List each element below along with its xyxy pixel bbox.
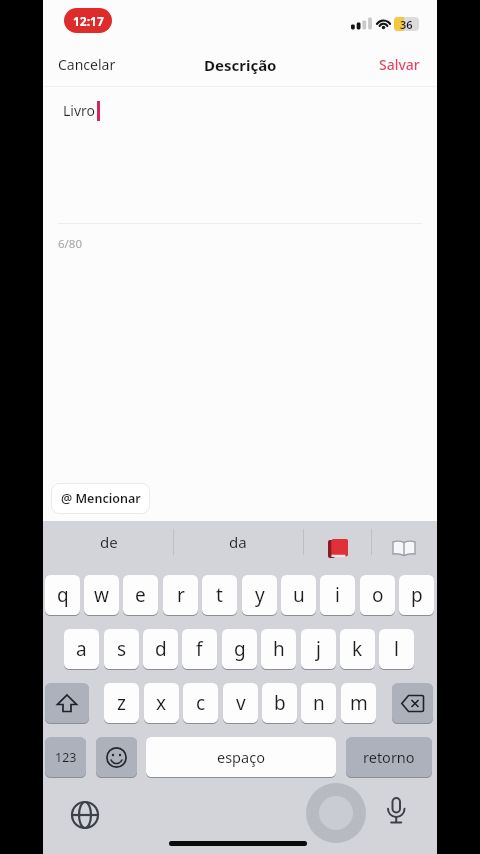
staticText: w <box>94 582 109 608</box>
button[interactable]: d <box>143 629 178 669</box>
staticText: Salvar <box>379 55 420 74</box>
staticText: a <box>76 636 87 662</box>
staticText: e <box>135 582 146 608</box>
staticText: 36 <box>400 17 413 31</box>
staticText: h <box>273 636 285 662</box>
button[interactable]: m <box>341 683 376 723</box>
staticText: t <box>216 582 223 608</box>
staticText: y <box>255 582 265 608</box>
staticText: r <box>177 582 185 608</box>
staticText: q <box>57 582 69 608</box>
staticText: d <box>155 636 167 662</box>
button[interactable]: k <box>340 629 375 669</box>
button[interactable]: w <box>84 575 119 615</box>
button[interactable]: x <box>144 683 179 723</box>
staticText: v <box>236 690 246 716</box>
button[interactable] <box>328 539 348 558</box>
button[interactable]: e <box>123 575 158 615</box>
button[interactable]: retorno <box>346 737 432 777</box>
staticText: u <box>293 582 305 608</box>
button[interactable]: f <box>182 629 217 669</box>
button[interactable] <box>392 683 433 723</box>
button[interactable]: de <box>45 521 173 563</box>
staticText: Descrição <box>204 55 277 75</box>
button[interactable]: t <box>202 575 237 615</box>
staticText: x <box>156 690 167 716</box>
button[interactable]: 123 <box>45 737 86 777</box>
button[interactable]: o <box>360 575 395 615</box>
button[interactable]: z <box>104 683 139 723</box>
button[interactable]: u <box>281 575 316 615</box>
button[interactable]: q <box>45 575 80 615</box>
staticText: 123 <box>55 749 77 766</box>
button[interactable]: a <box>64 629 99 669</box>
button[interactable]: l <box>379 629 414 669</box>
button[interactable]: 12:17 <box>64 8 112 33</box>
button[interactable]: Salvar <box>375 55 423 74</box>
button[interactable] <box>96 737 137 777</box>
button[interactable]: h <box>261 629 296 669</box>
button[interactable]: v <box>223 683 258 723</box>
staticText: p <box>411 582 423 608</box>
staticText: g <box>234 636 246 662</box>
button[interactable]: j <box>301 629 336 669</box>
staticText: k <box>352 636 363 662</box>
staticText: l <box>394 636 399 662</box>
button[interactable]: c <box>183 683 218 723</box>
staticText: s <box>117 636 127 662</box>
staticText: c <box>196 690 206 716</box>
button[interactable] <box>385 798 407 828</box>
button[interactable]: g <box>222 629 257 669</box>
staticText: Cancelar <box>58 55 116 74</box>
button[interactable]: n <box>301 683 336 723</box>
button[interactable]: @ Mencionar <box>51 483 150 514</box>
staticText: z <box>117 690 126 716</box>
button[interactable]: s <box>104 629 139 669</box>
staticText: o <box>372 582 384 608</box>
button[interactable]: p <box>399 575 434 615</box>
staticText: da <box>229 532 247 552</box>
button[interactable] <box>393 540 415 557</box>
staticText: b <box>274 690 286 716</box>
staticText: 12:17 <box>73 13 104 29</box>
staticText: @ Mencionar <box>61 490 141 507</box>
button[interactable] <box>69 799 101 831</box>
staticText: espaço <box>217 747 265 767</box>
staticText: m <box>350 690 368 716</box>
button[interactable]: y <box>242 575 277 615</box>
staticText: de <box>100 532 118 552</box>
staticText: n <box>313 690 325 716</box>
staticText: 6/80 <box>58 236 83 252</box>
staticText: f <box>196 636 203 662</box>
button[interactable]: r <box>163 575 198 615</box>
button[interactable]: Cancelar <box>58 55 116 74</box>
button[interactable]: i <box>320 575 355 615</box>
staticText: Livro <box>63 101 96 120</box>
button[interactable]: b <box>262 683 297 723</box>
staticText: i <box>335 582 340 608</box>
button[interactable] <box>45 683 89 723</box>
staticText: j <box>316 636 321 662</box>
button[interactable]: da <box>173 521 303 563</box>
staticText: retorno <box>363 747 415 767</box>
button[interactable]: espaço <box>146 737 336 777</box>
button[interactable] <box>306 783 366 843</box>
